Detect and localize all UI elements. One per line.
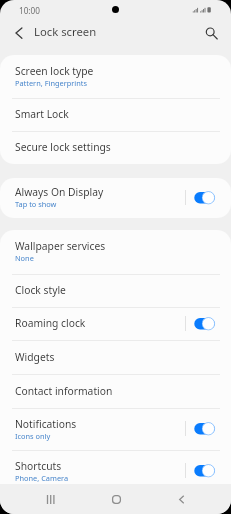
staticText: Screen lock type — [15, 64, 94, 78]
staticText: Wallpaper services — [15, 239, 106, 253]
button[interactable]: Wallpaper services — [0, 230, 231, 274]
staticText: Notifications — [15, 417, 77, 431]
staticText: Always On Display — [15, 185, 104, 199]
staticText: Contact information — [15, 384, 113, 398]
button[interactable]: Search — [199, 22, 221, 44]
staticText: 10:00 — [19, 5, 40, 16]
staticText: None — [15, 253, 34, 263]
button[interactable]: Notifications — [0, 409, 231, 450]
button[interactable]: Toggle on — [194, 314, 215, 335]
button[interactable]: Home — [101, 484, 131, 514]
button[interactable]: Toggle on — [194, 188, 215, 209]
button[interactable]: Toggle on — [194, 461, 215, 482]
button[interactable]: Recents — [35, 484, 65, 514]
staticText: Pattern, Fingerprints — [15, 78, 88, 88]
staticText: Clock style — [15, 283, 66, 297]
button[interactable]: Navigate up — [8, 22, 30, 44]
button[interactable]: Shortcuts — [0, 451, 231, 484]
button[interactable]: Roaming clock — [0, 308, 231, 340]
button[interactable]: Screen lock type — [0, 55, 231, 98]
button[interactable]: Back — [166, 484, 196, 514]
staticText: Lock screen — [34, 24, 97, 39]
button[interactable]: Clock style — [0, 275, 231, 307]
button[interactable]: Secure lock settings — [0, 132, 231, 164]
staticText: Widgets — [15, 350, 55, 364]
staticText: Tap to show — [15, 199, 57, 209]
button[interactable]: Smart Lock — [0, 99, 231, 131]
button[interactable]: Toggle on — [194, 419, 215, 440]
staticText: Phone, Camera — [15, 473, 69, 483]
button[interactable]: Always On Display — [0, 178, 231, 218]
staticText: Smart Lock — [15, 107, 69, 121]
staticText: Secure lock settings — [15, 140, 111, 154]
button[interactable]: Widgets — [0, 341, 231, 374]
staticText: Icons only — [15, 431, 51, 441]
staticText: Shortcuts — [15, 459, 62, 473]
staticText: Roaming clock — [15, 316, 86, 330]
button[interactable]: Contact information — [0, 375, 231, 408]
